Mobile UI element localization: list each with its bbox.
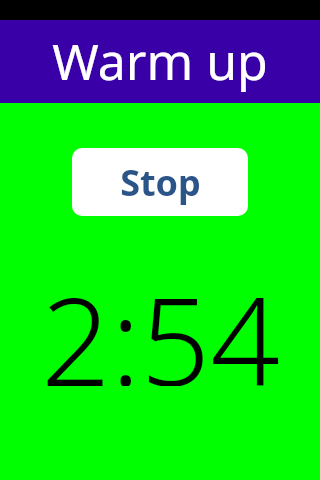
staticText: Warm up [52, 27, 268, 95]
staticText: 2:54 [41, 256, 280, 386]
button[interactable]: Stop [72, 148, 248, 216]
staticText: Stop [120, 158, 201, 207]
